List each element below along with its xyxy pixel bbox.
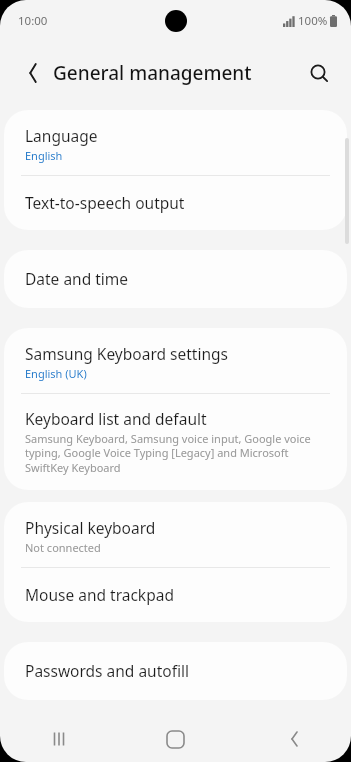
- staticText: Date and time: [25, 268, 129, 289]
- button[interactable]: Recent apps: [0, 716, 117, 762]
- button[interactable]: Date and time: [4, 250, 347, 308]
- button[interactable]: Language: [4, 110, 347, 175]
- button[interactable]: Samsung Keyboard settings: [4, 328, 347, 393]
- staticText: Language: [25, 125, 98, 146]
- button[interactable]: Home: [117, 716, 234, 762]
- staticText: General management: [53, 60, 252, 86]
- staticText: Not connected: [25, 540, 101, 555]
- button[interactable]: Physical keyboard: [4, 502, 347, 567]
- staticText: Keyboard list and default: [25, 408, 207, 429]
- staticText: 10:00: [18, 13, 48, 29]
- button[interactable]: Back: [14, 55, 50, 91]
- staticText: Passwords and autofill: [25, 660, 189, 681]
- staticText: Samsung Keyboard settings: [25, 343, 228, 364]
- button[interactable]: Keyboard list and default: [4, 394, 347, 490]
- button[interactable]: Search: [301, 55, 337, 91]
- staticText: Mouse and trackpad: [25, 584, 174, 605]
- button[interactable]: Mouse and trackpad: [4, 568, 347, 622]
- staticText: Samsung Keyboard, Samsung voice input, G…: [25, 431, 329, 476]
- staticText: English: [25, 148, 63, 163]
- staticText: Physical keyboard: [25, 517, 156, 538]
- staticText: English (UK): [25, 366, 87, 381]
- button[interactable]: Text-to-speech output: [4, 176, 347, 230]
- staticText: 100%: [298, 13, 328, 29]
- staticText: Text-to-speech output: [25, 192, 185, 213]
- button[interactable]: Back: [234, 716, 351, 762]
- button[interactable]: Passwords and autofill: [4, 642, 347, 700]
